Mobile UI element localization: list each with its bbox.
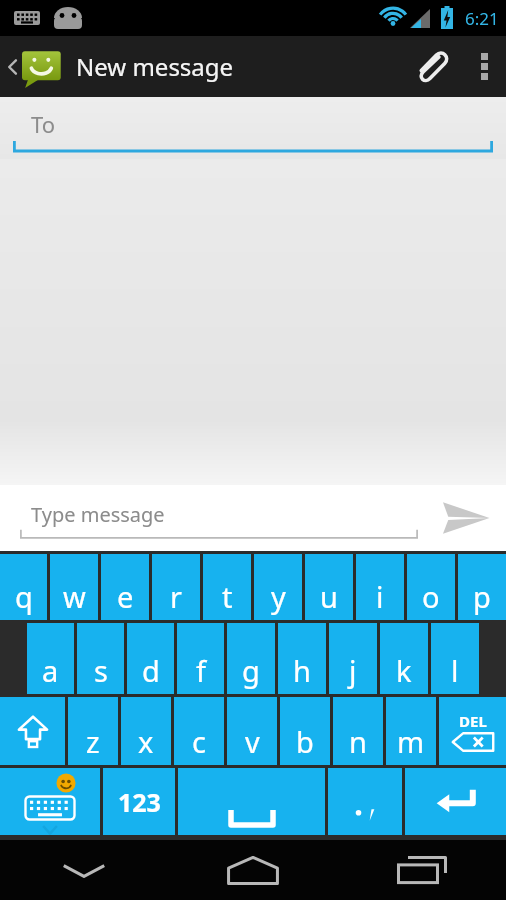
button[interactable]: 123 (103, 768, 175, 835)
button[interactable]: Hide keyboard (0, 840, 168, 900)
button[interactable] (328, 768, 402, 835)
button[interactable]: v (227, 697, 277, 765)
staticText: k (396, 651, 412, 690)
staticText: o (422, 577, 440, 616)
button[interactable]: Shift (0, 697, 65, 765)
button[interactable]: Home (168, 840, 337, 900)
button[interactable]: r (152, 554, 200, 620)
button[interactable]: n (333, 697, 383, 765)
button[interactable]: New message (0, 36, 240, 97)
button[interactable]: Recent apps (337, 840, 506, 900)
staticText: x (138, 722, 154, 761)
button[interactable]: t (203, 554, 251, 620)
staticText: z (86, 722, 100, 761)
button[interactable]: l (431, 623, 479, 694)
button[interactable]: d (127, 623, 174, 694)
staticText: r (170, 577, 182, 616)
button[interactable]: To (13, 97, 493, 159)
staticText: m (397, 722, 425, 761)
staticText: p (473, 577, 491, 616)
button[interactable]: e (101, 554, 149, 620)
button[interactable]: p (458, 554, 506, 620)
staticText: New message (76, 50, 234, 83)
button[interactable]: c (174, 697, 224, 765)
button[interactable]: x (121, 697, 171, 765)
staticText: 6:21 (465, 7, 499, 30)
staticText: i (376, 577, 384, 616)
button[interactable]: h (278, 623, 326, 694)
staticText: e (117, 577, 134, 616)
button[interactable]: m (386, 697, 436, 765)
staticText: q (15, 577, 33, 616)
staticText: y (271, 577, 286, 616)
button[interactable]: f (177, 623, 224, 694)
button[interactable]: Space (178, 768, 325, 835)
staticText: t (222, 577, 233, 616)
staticText: d (142, 651, 160, 690)
staticText: c (192, 722, 206, 761)
staticText: Type message (31, 501, 165, 528)
button[interactable]: b (280, 697, 330, 765)
button[interactable]: Type message (20, 485, 418, 551)
staticText: v (245, 722, 260, 761)
button[interactable]: More options (462, 36, 506, 97)
button[interactable]: s (77, 623, 124, 694)
button[interactable]: g (227, 623, 275, 694)
button[interactable]: a (27, 623, 74, 694)
staticText: g (242, 651, 260, 690)
staticText: b (296, 722, 314, 761)
staticText: To (31, 109, 56, 139)
button[interactable]: Attach (400, 36, 462, 97)
button[interactable]: j (329, 623, 377, 694)
button[interactable]: i (356, 554, 404, 620)
staticText: 123 (118, 785, 161, 819)
button[interactable]: k (380, 623, 428, 694)
button[interactable]: Delete (439, 697, 506, 765)
staticText: DEL (459, 711, 487, 731)
button[interactable]: z (68, 697, 118, 765)
button[interactable]: u (305, 554, 353, 620)
staticText: s (94, 651, 108, 690)
button[interactable]: Switch keyboard (0, 768, 100, 835)
staticText: l (451, 651, 459, 690)
staticText: f (196, 651, 206, 690)
button[interactable]: Send (426, 485, 506, 551)
staticText: j (349, 651, 357, 690)
button[interactable]: w (50, 554, 98, 620)
button[interactable]: Enter (405, 768, 506, 835)
button[interactable]: q (0, 554, 47, 620)
staticText: u (320, 577, 338, 616)
staticText: n (349, 722, 367, 761)
button[interactable]: y (254, 554, 302, 620)
staticText: h (293, 651, 311, 690)
button[interactable]: o (407, 554, 455, 620)
staticText: w (63, 577, 86, 616)
staticText: a (42, 651, 59, 690)
